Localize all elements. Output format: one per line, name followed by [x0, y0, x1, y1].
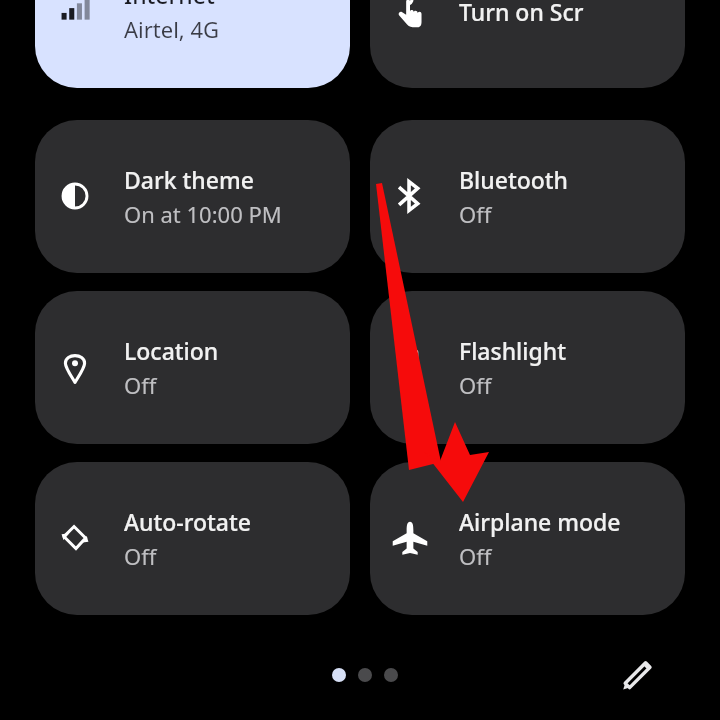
staticText: Turn on Scr — [459, 0, 584, 27]
button[interactable]: Flashlight — [370, 291, 685, 444]
button[interactable]: Dark theme — [35, 120, 350, 273]
staticText: Airplane mode — [459, 506, 621, 537]
staticText: Off — [124, 370, 157, 400]
button[interactable]: Bluetooth — [370, 120, 685, 273]
staticText: Flashlight — [459, 335, 567, 366]
staticText: On at 10:00 PM — [124, 199, 282, 229]
button[interactable]: Auto-rotate — [35, 462, 350, 615]
staticText: Airtel, 4G — [124, 14, 220, 44]
staticText: Off — [124, 541, 157, 571]
button[interactable]: Edit tiles — [608, 648, 664, 704]
button[interactable]: Turn on Scr — [370, 0, 685, 88]
staticText: Off — [459, 370, 492, 400]
staticText: Dark theme — [124, 164, 254, 195]
button[interactable]: Location — [35, 291, 350, 444]
staticText: Off — [459, 199, 492, 229]
staticText: Bluetooth — [459, 164, 569, 195]
staticText: Auto-rotate — [124, 506, 252, 537]
staticText: Internet — [124, 0, 215, 10]
button[interactable]: Internet — [35, 0, 350, 88]
button[interactable]: Airplane mode — [370, 462, 685, 615]
staticText: Off — [459, 541, 492, 571]
staticText: Location — [124, 335, 219, 366]
